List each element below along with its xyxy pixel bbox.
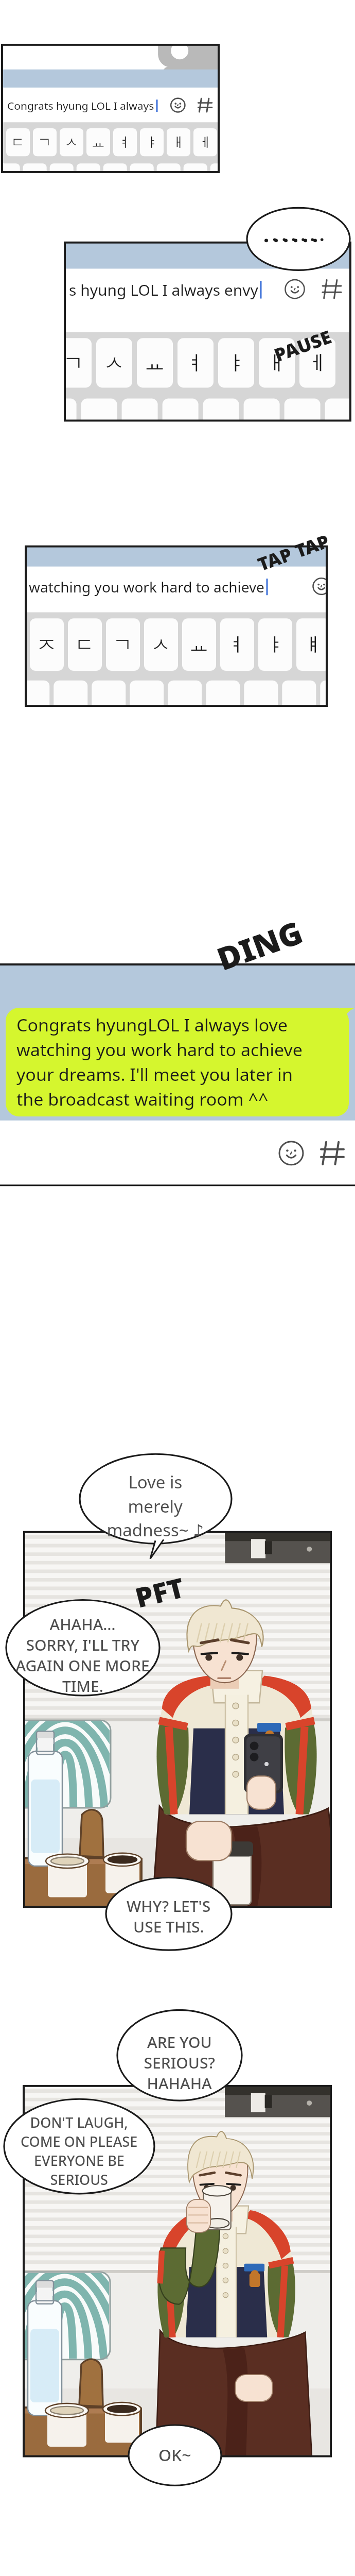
button[interactable]	[0, 0, 355, 2576]
